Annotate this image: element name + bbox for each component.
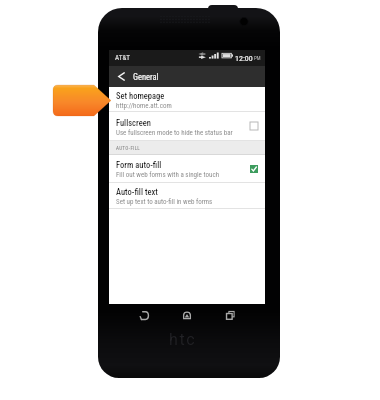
staticText: Auto-fill text: [116, 187, 158, 197]
staticText: http://home.att.com: [116, 102, 172, 110]
button[interactable]: Back: [136, 307, 152, 323]
button[interactable]: Auto-fill text: [109, 183, 265, 209]
button[interactable]: Fullscreen: [109, 112, 265, 141]
staticText: AT&T: [115, 54, 131, 62]
staticText: Fill out web forms with a single touch: [116, 171, 220, 179]
staticText: Set up text to auto-fill in web forms: [116, 198, 213, 206]
staticText: General: [133, 72, 159, 82]
staticText: Use fullscreen mode to hide the status b…: [116, 129, 233, 137]
staticText: Form auto-fill: [116, 160, 162, 170]
button[interactable]: Form auto-fill: [109, 155, 265, 183]
staticText: PM: [254, 55, 261, 61]
button[interactable]: Navigate up: [109, 66, 265, 87]
staticText: Fullscreen: [116, 118, 151, 128]
button[interactable]: Recent apps: [222, 307, 238, 323]
button[interactable]: Set homepage: [109, 87, 265, 112]
staticText: 12:00: [235, 54, 253, 63]
staticText: htc: [169, 330, 197, 349]
button[interactable]: Home: [179, 307, 195, 323]
staticText: Set homepage: [116, 91, 165, 101]
other: Navigate up: [117, 72, 126, 81]
other: Callout pointer: [53, 85, 111, 116]
staticText: AUTO-FILL: [116, 145, 141, 151]
